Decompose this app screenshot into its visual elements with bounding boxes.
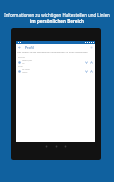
staticText: im persönlichen Bereich bbox=[0, 18, 114, 24]
staticText: Meine Haltestellen bbox=[18, 57, 26, 58]
staticText: Profil bbox=[25, 45, 34, 50]
staticText: Linie 4 bbox=[22, 63, 25, 64]
staticText: Nordbahnhof bbox=[22, 72, 28, 73]
staticText: Hauptbahnhof, Steig C bbox=[22, 60, 33, 61]
button[interactable]: Home bbox=[55, 145, 58, 148]
staticText: Meine Linien bbox=[18, 66, 23, 67]
staticText: Hier finden Sie die wichtigsten Informat… bbox=[17, 51, 96, 54]
button[interactable]: Expand bbox=[85, 70, 88, 73]
button[interactable]: Collapse bbox=[90, 70, 93, 73]
button[interactable]: Linie 12 Richtung bbox=[16, 69, 95, 73]
button[interactable]: Hauptbahnhof, Steig C bbox=[16, 60, 95, 64]
button[interactable]: Back bbox=[18, 46, 21, 49]
staticText: Linie 12 Richtung bbox=[22, 69, 30, 70]
button[interactable]: Back bbox=[45, 145, 48, 148]
button[interactable]: Expand bbox=[85, 61, 88, 64]
button[interactable]: Recent apps bbox=[64, 145, 67, 148]
button[interactable]: Collapse bbox=[90, 61, 93, 64]
button[interactable]: More options bbox=[90, 46, 93, 49]
staticText: Informationen zu wichtigen Haltestellen … bbox=[0, 12, 114, 18]
